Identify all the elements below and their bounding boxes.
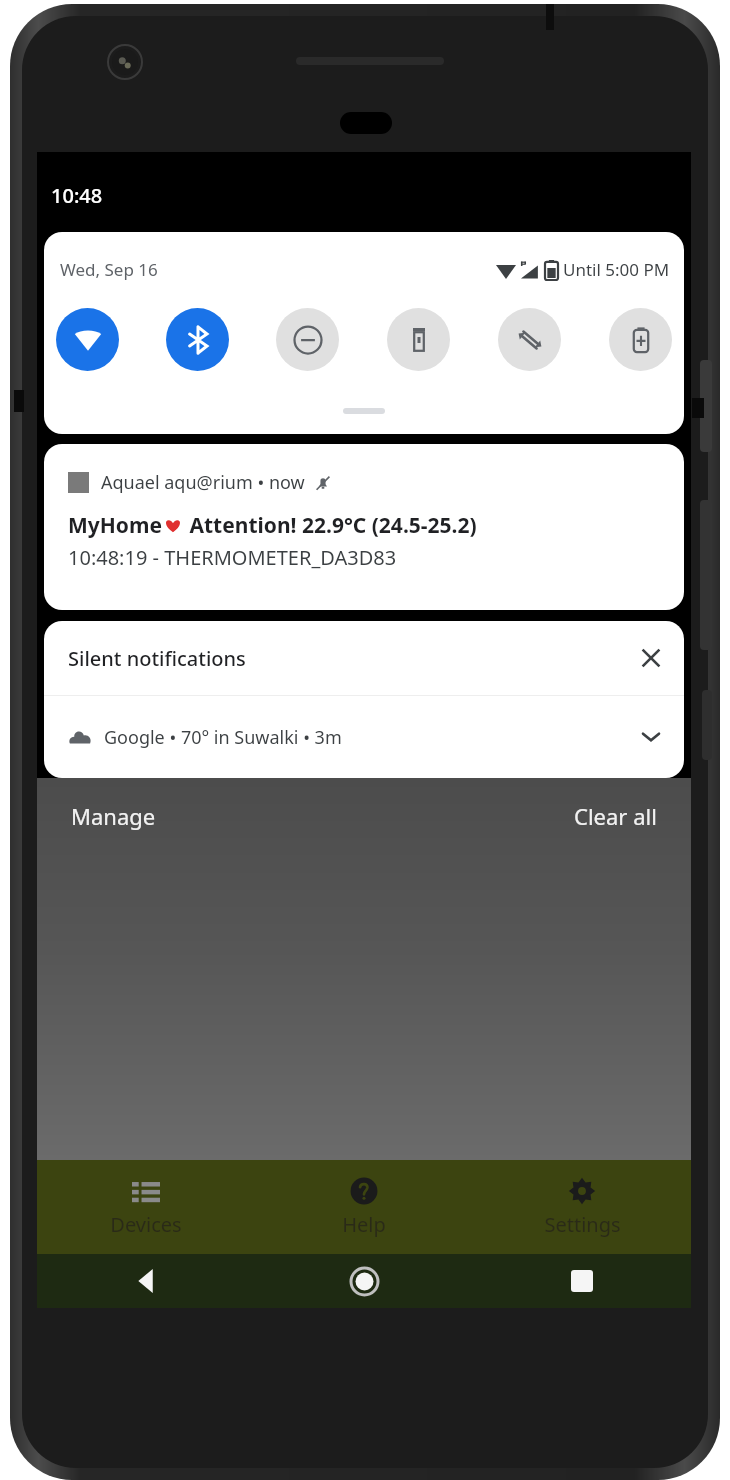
staticText: Settings xyxy=(544,1211,621,1238)
button[interactable]: Quick setting xyxy=(387,308,450,371)
staticText: MyHome xyxy=(68,511,162,540)
button[interactable]: Recent apps xyxy=(473,1254,691,1308)
staticText: Aquael aqu@rium • now xyxy=(101,470,305,495)
staticText: Until 5:00 PM xyxy=(563,258,670,281)
staticText: Manage xyxy=(71,801,156,831)
button[interactable]: Quick setting xyxy=(166,308,229,371)
button[interactable]: Help xyxy=(255,1160,473,1254)
staticText: Devices xyxy=(110,1211,182,1238)
button[interactable]: Manage xyxy=(65,795,162,837)
staticText: Google • 70° in Suwalki • 3m xyxy=(104,725,342,750)
button[interactable]: Clear all xyxy=(568,795,663,837)
button[interactable]: Aquael aqu@rium • now xyxy=(44,444,684,610)
button[interactable]: Expand xyxy=(628,714,674,760)
button[interactable]: Silent notifications xyxy=(44,621,684,695)
button[interactable]: Dismiss silent notifications xyxy=(628,635,674,681)
button[interactable]: Google • 70° in Suwalki • 3m xyxy=(44,696,684,778)
button[interactable]: Back xyxy=(37,1254,255,1308)
button[interactable]: Home xyxy=(255,1254,473,1308)
button[interactable]: Devices xyxy=(37,1160,255,1254)
staticText: Wed, Sep 16 xyxy=(60,258,158,281)
staticText: 10:48 xyxy=(51,182,103,209)
button[interactable]: Quick setting xyxy=(56,308,119,371)
staticText: Help xyxy=(342,1211,386,1238)
staticText: 10:48:19 - THERMOMETER_DA3D83 xyxy=(68,544,397,571)
button[interactable]: Quick setting xyxy=(276,308,339,371)
button[interactable]: Settings xyxy=(473,1160,691,1254)
staticText: Clear all xyxy=(574,801,657,831)
button[interactable]: Quick setting xyxy=(609,308,672,371)
staticText: Silent notifications xyxy=(68,645,246,672)
button[interactable]: Quick setting xyxy=(498,308,561,371)
staticText: Attention! 22.9°C (24.5-25.2) xyxy=(184,511,477,540)
